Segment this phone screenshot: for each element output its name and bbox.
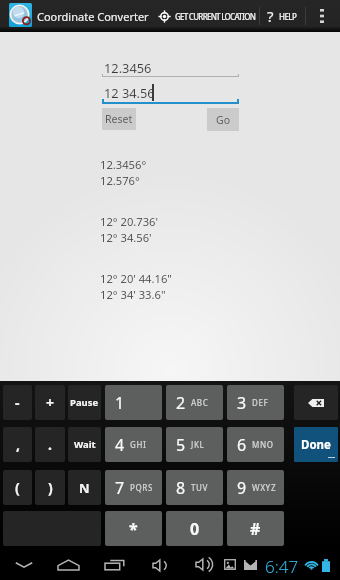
- staticText: 8: [176, 477, 186, 499]
- button[interactable]: #: [227, 511, 284, 546]
- button[interactable]: Reset: [102, 108, 136, 130]
- staticText: 7: [115, 477, 125, 499]
- staticText: ?: [267, 6, 274, 26]
- staticText: 2: [176, 392, 186, 414]
- staticText: 4: [115, 434, 125, 456]
- staticText: #: [250, 518, 261, 540]
- staticText: 0: [190, 518, 200, 540]
- staticText: *: [129, 518, 138, 540]
- staticText: 12.3456°: [100, 157, 147, 172]
- staticText: WXYZ: [252, 482, 277, 493]
- staticText: HELP: [279, 11, 297, 22]
- staticText: TUV: [191, 482, 209, 493]
- button[interactable]: Wait: [68, 427, 101, 462]
- button[interactable]: N: [68, 470, 101, 505]
- staticText: 12.576°: [100, 173, 140, 188]
- staticText: GHI: [130, 439, 147, 450]
- staticText: 6: [237, 434, 247, 456]
- staticText: 5: [176, 434, 186, 456]
- staticText: Go: [216, 113, 230, 127]
- button[interactable]: Done: [294, 427, 338, 462]
- button[interactable]: Backspace: [294, 385, 338, 420]
- button[interactable]: 6: [227, 427, 284, 462]
- staticText: Pause: [70, 396, 99, 409]
- staticText: (: [15, 478, 20, 497]
- button[interactable]: (: [3, 470, 32, 505]
- button[interactable]: +: [35, 385, 65, 420]
- staticText: 9: [237, 477, 247, 499]
- staticText: .: [48, 435, 52, 454]
- button[interactable]: 8: [166, 470, 223, 505]
- staticText: MNO: [252, 439, 274, 450]
- staticText: ,: [16, 435, 20, 454]
- button[interactable]: Back: [9, 552, 38, 578]
- staticText: Wait: [74, 438, 96, 451]
- button[interactable]: Home: [53, 552, 84, 578]
- staticText: 12° 20.736': [100, 214, 159, 229]
- staticText: 12° 34.56': [100, 230, 152, 245]
- staticText: ABC: [191, 397, 209, 408]
- staticText: +: [46, 393, 55, 412]
- staticText: 6:47: [265, 555, 299, 578]
- staticText: 1: [115, 392, 125, 414]
- staticText: ): [48, 478, 53, 497]
- button[interactable]: 4: [105, 427, 162, 462]
- button[interactable]: Pause: [68, 385, 101, 420]
- staticText: DEF: [252, 397, 269, 408]
- button[interactable]: Recent apps: [99, 552, 130, 578]
- button[interactable]: ,: [3, 427, 32, 462]
- button[interactable]: ?: [263, 0, 301, 32]
- staticText: JKL: [191, 439, 205, 450]
- button[interactable]: .: [35, 427, 65, 462]
- button[interactable]: *: [105, 511, 162, 546]
- button[interactable]: 1: [105, 385, 162, 420]
- button[interactable]: ): [35, 470, 65, 505]
- button[interactable]: More options: [308, 0, 336, 32]
- button[interactable]: GET CURRENT LOCATION: [156, 0, 260, 32]
- staticText: 12° 34' 33.6": [100, 287, 166, 302]
- button[interactable]: 0: [166, 511, 223, 546]
- button[interactable]: 5: [166, 427, 223, 462]
- staticText: 3: [237, 392, 247, 414]
- button[interactable]: 3: [227, 385, 284, 420]
- button[interactable]: Volume: [145, 552, 174, 578]
- staticText: Done: [301, 437, 331, 453]
- button[interactable]: 9: [227, 470, 284, 505]
- staticText: GET CURRENT LOCATION: [175, 11, 256, 22]
- staticText: -: [15, 393, 20, 412]
- staticText: N: [79, 479, 90, 497]
- button[interactable]: 7: [105, 470, 162, 505]
- button[interactable]: Go: [207, 108, 239, 131]
- staticText: Reset: [105, 112, 133, 126]
- button[interactable]: -: [3, 385, 32, 420]
- staticText: 12 34.56: [104, 84, 155, 101]
- staticText: Coordinate Converter: [37, 9, 149, 24]
- staticText: 12° 20' 44.16": [100, 271, 172, 286]
- staticText: 12.3456: [104, 59, 152, 76]
- staticText: PQRS: [130, 482, 154, 493]
- button[interactable]: 2: [166, 385, 223, 420]
